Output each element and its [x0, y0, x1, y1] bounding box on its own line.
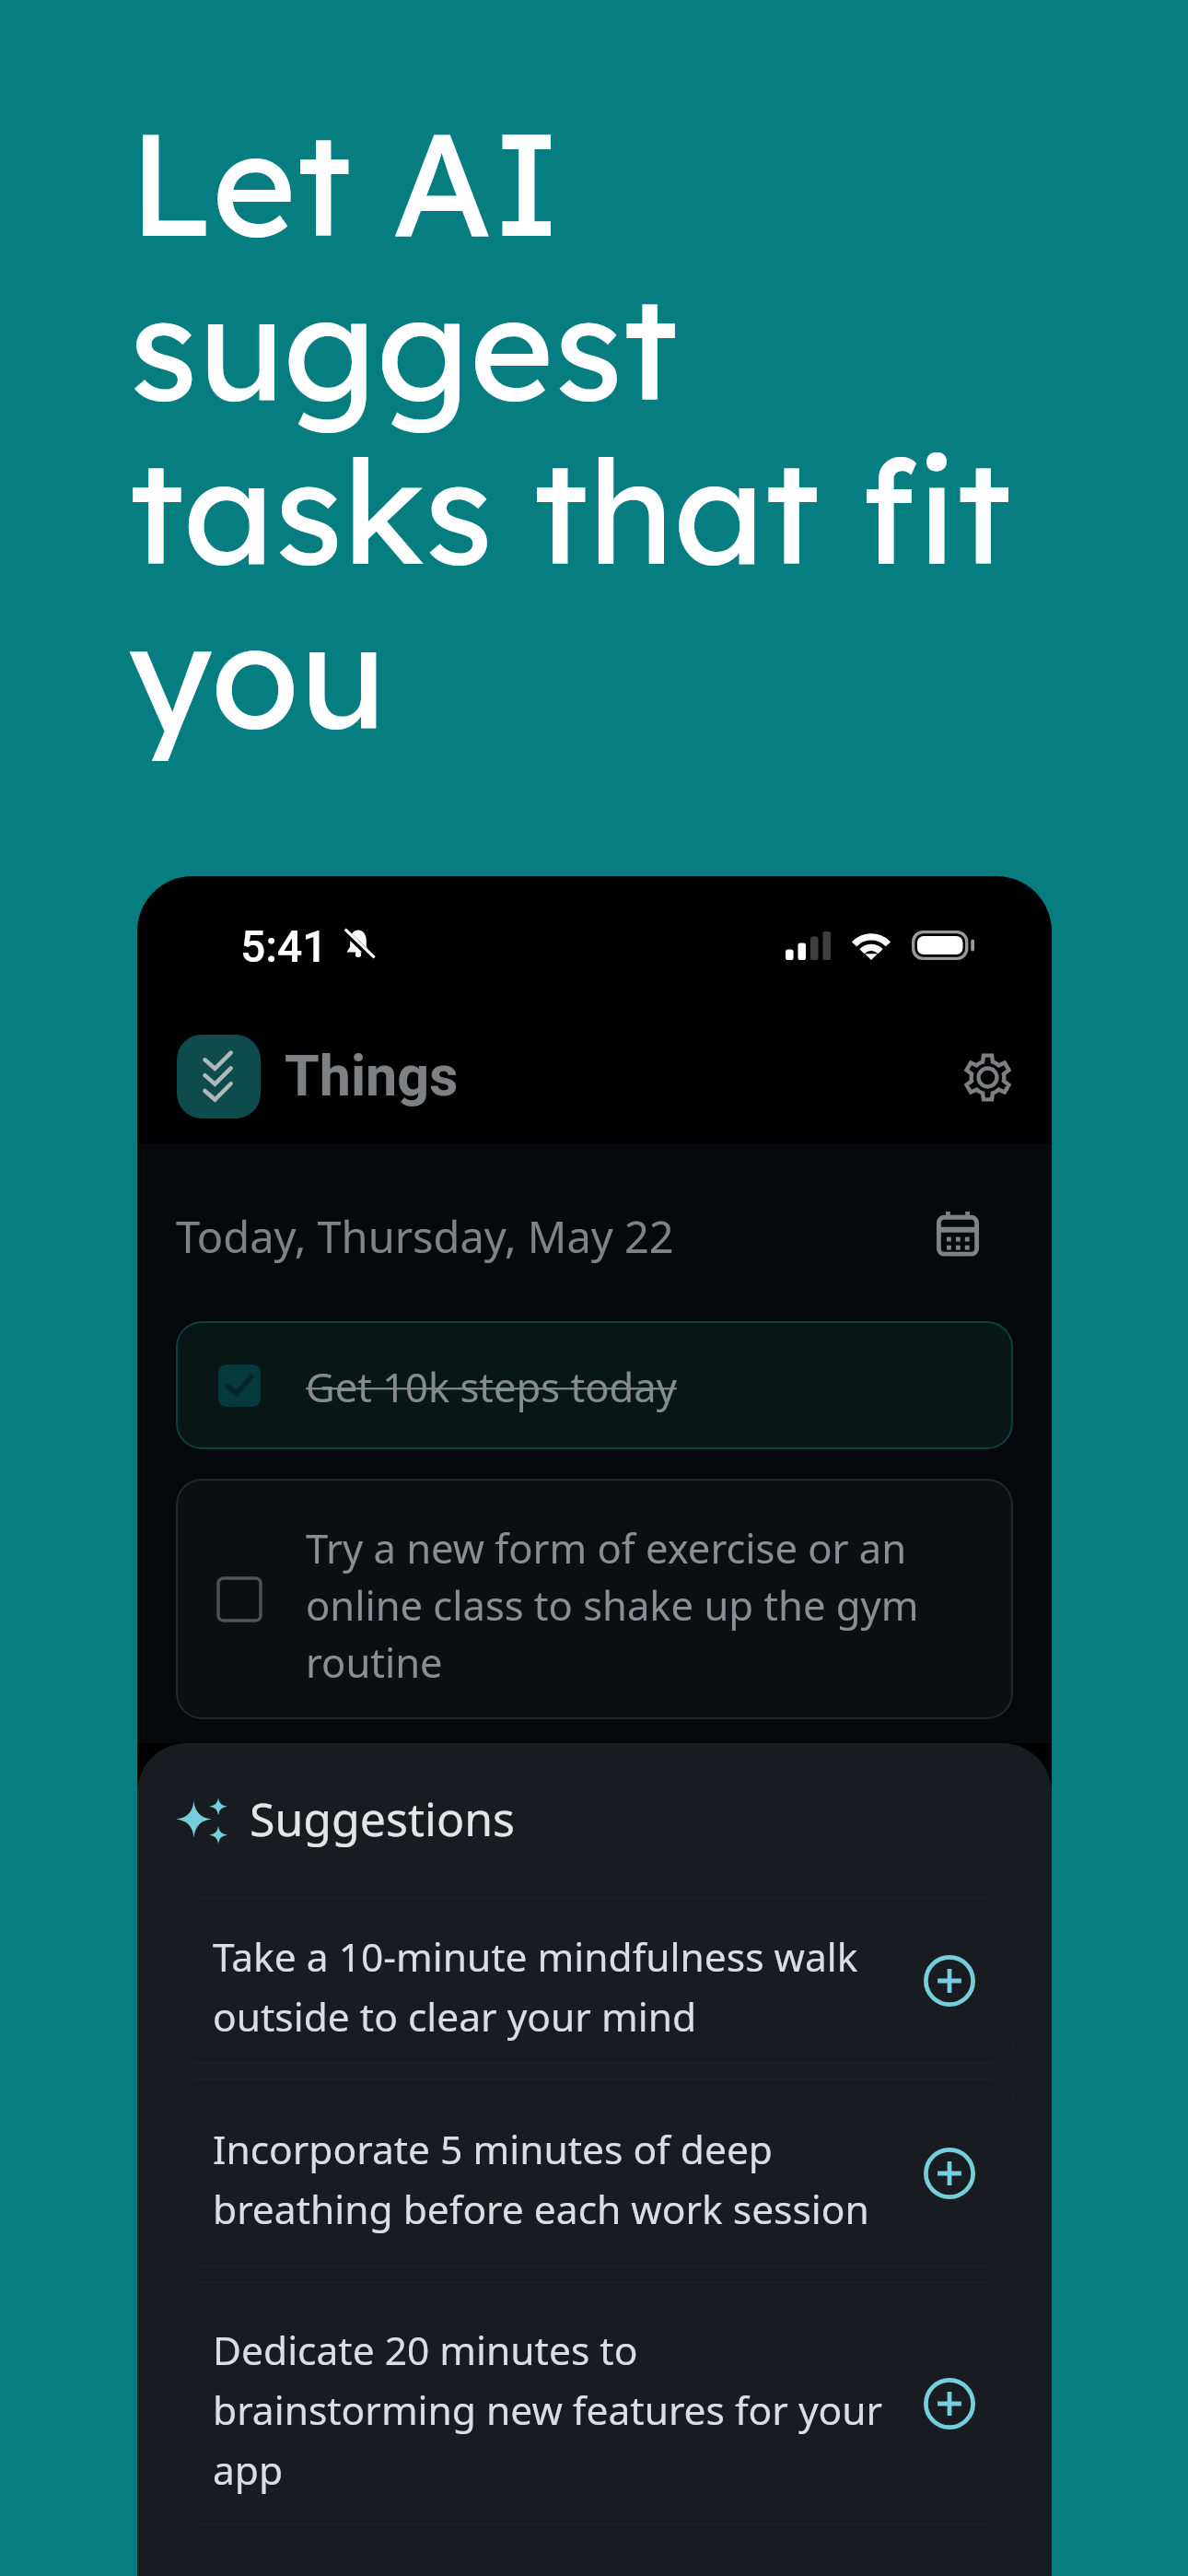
button[interactable]: Add task — [919, 2143, 980, 2204]
staticText: Let AI suggest tasks that fit you — [129, 105, 1012, 761]
button[interactable]: Try a new form of exercise or an online … — [176, 1479, 1013, 1719]
staticText: Suggestions — [250, 1787, 516, 1850]
staticText: Try a new form of exercise or an online … — [306, 1518, 950, 1690]
button[interactable]: Get 10k steps today — [176, 1321, 1013, 1449]
staticText: Take a 10-minute mindfulness walk outsid… — [213, 1925, 894, 2044]
staticText: Incorporate 5 minutes of deep breathing … — [213, 2117, 894, 2237]
staticText: Things — [285, 1043, 459, 1108]
button[interactable]: Calendar — [926, 1202, 990, 1267]
button[interactable]: Add task — [919, 1950, 980, 2011]
button[interactable]: Settings — [951, 1041, 1023, 1113]
staticText: Dedicate 20 minutes to brainstorming new… — [213, 2318, 894, 2498]
staticText: Get 10k steps today — [306, 1359, 677, 1413]
staticText: 5:41 — [240, 920, 328, 972]
button[interactable] — [174, 2282, 1015, 2525]
button[interactable]: Things app icon — [177, 1035, 261, 1118]
button[interactable] — [174, 2078, 1015, 2267]
staticText: Today, Thursday, May 22 — [176, 1207, 674, 1266]
button[interactable] — [174, 1897, 1015, 2064]
button[interactable]: Add task — [919, 2373, 980, 2434]
